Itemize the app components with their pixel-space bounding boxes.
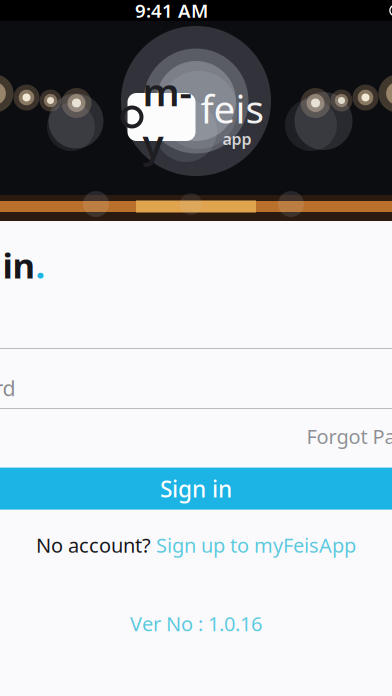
staticText: No account? (36, 532, 156, 558)
staticText: feis (200, 83, 264, 134)
staticText: . (35, 242, 45, 288)
staticText: Sign up to myFeisApp (156, 532, 356, 558)
staticText: app (222, 128, 251, 149)
staticText: 9:41 AM (135, 0, 208, 23)
button[interactable]: Sign in (0, 468, 392, 510)
button[interactable]: Sign up to myFeisApp (156, 532, 356, 558)
staticText: Forgot Password? (306, 423, 392, 450)
staticText: Ver No : 1.0.16 (130, 610, 262, 637)
button[interactable]: Forgot Password? (306, 419, 392, 454)
staticText: my (142, 66, 191, 168)
staticText: Password (0, 374, 15, 402)
staticText: Sign in (0, 242, 35, 288)
staticText: Sign in (160, 473, 232, 504)
